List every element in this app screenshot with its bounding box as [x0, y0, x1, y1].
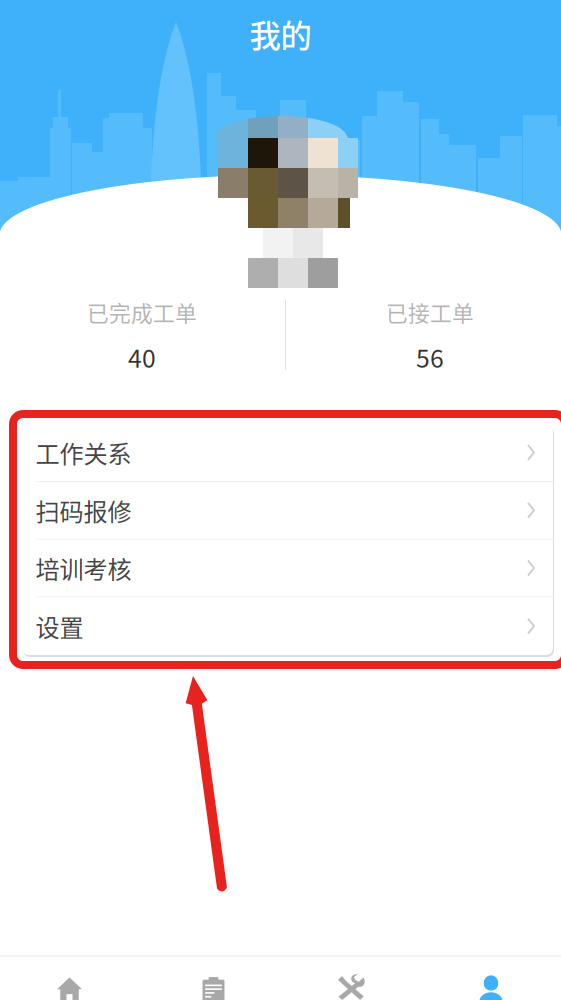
button[interactable]: 扫码报修 [22, 482, 553, 540]
staticText: 已完成工单 [87, 296, 197, 328]
staticText: 设置 [35, 609, 83, 644]
button[interactable]: 培训考核 [22, 539, 553, 597]
staticText: 培训考核 [35, 550, 131, 585]
staticText: 56 [416, 339, 444, 375]
button[interactable]: Profile [0, 0, 561, 1000]
staticText: 工作关系 [35, 435, 131, 470]
button[interactable]: Home [0, 0, 561, 1000]
staticText: 我的 [249, 11, 311, 57]
staticText: 扫码报修 [35, 493, 131, 528]
button[interactable]: Tools [0, 0, 561, 1000]
button[interactable]: Work orders [0, 0, 561, 1000]
button[interactable]: 工作关系 [22, 424, 553, 482]
staticText: 已接工单 [386, 296, 474, 328]
button[interactable]: 设置 [22, 597, 553, 655]
staticText: 40 [128, 339, 156, 375]
